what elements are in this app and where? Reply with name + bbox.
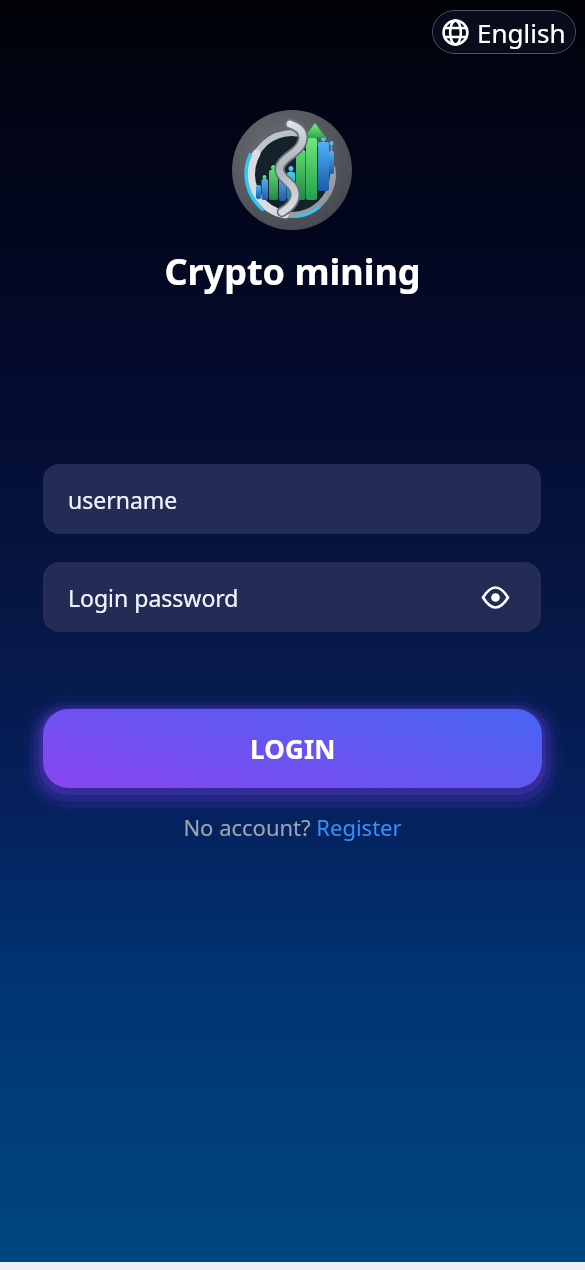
- staticText: Login password: [68, 582, 239, 613]
- staticText: English: [477, 15, 566, 50]
- staticText: Crypto mining: [0, 247, 585, 296]
- staticText: No account? Register: [0, 812, 585, 842]
- staticText: username: [68, 484, 178, 515]
- staticText: LOGIN: [250, 731, 336, 766]
